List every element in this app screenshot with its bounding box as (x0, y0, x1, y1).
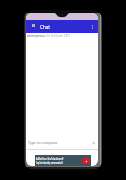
staticText: Type to compose (28, 140, 58, 145)
button[interactable]: Send (92, 141, 96, 145)
button[interactable]: AdMob has a YouTube channel! (35, 155, 91, 166)
button[interactable]: More options (91, 24, 94, 30)
staticText: hi 9:21pm CDT (47, 33, 71, 38)
staticText: Chat (40, 24, 50, 30)
staticText: Tap for tutorials, screencasts & more. (36, 161, 64, 165)
button[interactable]: Type to compose (28, 137, 96, 148)
staticText: AdMob has a YouTube channel! (36, 157, 64, 161)
staticText: anonymous (27, 33, 46, 38)
